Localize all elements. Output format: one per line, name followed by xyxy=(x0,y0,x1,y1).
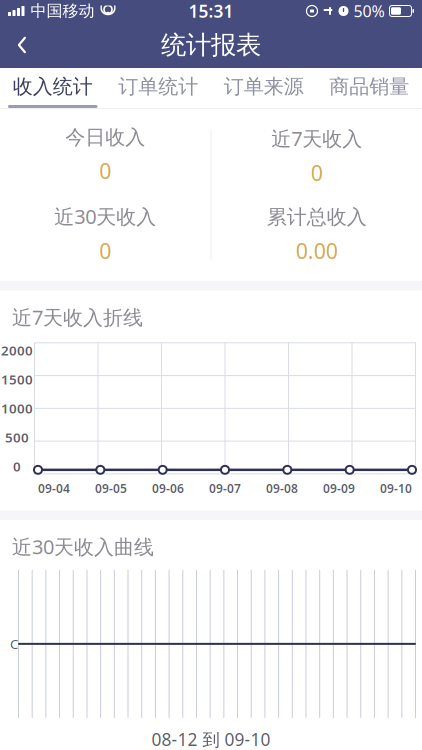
staticText: 2000 xyxy=(1,341,33,359)
staticText: 近7天收入 xyxy=(271,125,362,152)
button[interactable]: 返回 xyxy=(0,23,44,67)
staticText: 订单来源 xyxy=(224,74,304,99)
staticText: 0.00 xyxy=(296,236,338,265)
button[interactable]: 订单来源 xyxy=(211,68,316,108)
staticText: 09-09 xyxy=(323,480,355,496)
staticText: 15:31 xyxy=(188,0,233,22)
staticText: 近30天收入曲线 xyxy=(12,533,154,560)
staticText: 09-08 xyxy=(266,480,298,496)
staticText: 近7天收入折线 xyxy=(12,304,143,330)
staticText: 0 xyxy=(13,457,21,475)
staticText: 近30天收入 xyxy=(54,203,156,229)
staticText: 0 xyxy=(99,157,111,185)
button[interactable]: 商品销量 xyxy=(316,68,422,108)
staticText: 1000 xyxy=(1,399,33,417)
staticText: 统计报表 xyxy=(161,29,261,60)
staticText: 收入统计 xyxy=(13,74,93,99)
staticText: 今日收入 xyxy=(65,125,145,150)
staticText: C xyxy=(10,635,18,653)
staticText: 09-10 xyxy=(380,480,412,496)
staticText: 0 xyxy=(311,159,323,187)
staticText: 09-04 xyxy=(38,480,70,496)
button[interactable]: 订单统计 xyxy=(105,68,211,108)
staticText: 09-06 xyxy=(152,480,184,496)
staticText: 商品销量 xyxy=(329,74,409,99)
staticText: 订单统计 xyxy=(118,74,198,99)
button[interactable]: 收入统计 xyxy=(0,68,105,108)
staticText: 50% xyxy=(353,0,384,22)
staticText: 09-05 xyxy=(95,480,127,496)
staticText: 1500 xyxy=(1,370,33,388)
staticText: 累计总收入 xyxy=(267,205,367,229)
staticText: 0 xyxy=(99,236,111,265)
staticText: 08-12 到 09-10 xyxy=(151,728,270,750)
staticText: 中国移动 xyxy=(30,1,94,21)
staticText: 500 xyxy=(5,428,29,446)
staticText: 09-07 xyxy=(209,480,241,496)
